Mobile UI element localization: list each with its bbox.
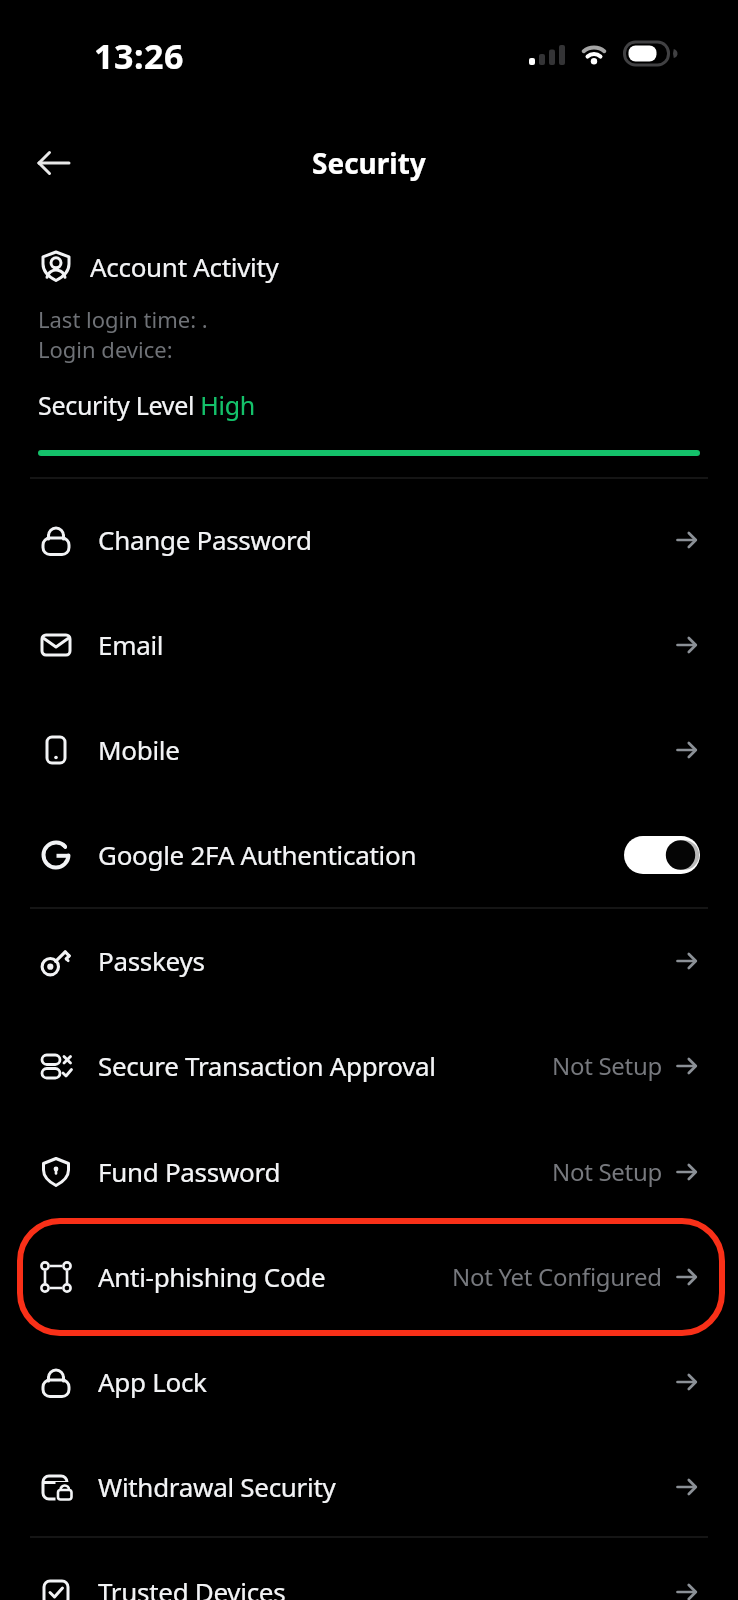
staticText: Not Yet Configured bbox=[452, 1260, 662, 1293]
staticText: Secure Transaction Approval bbox=[98, 1048, 436, 1083]
staticText: Anti-phishing Code bbox=[98, 1259, 326, 1294]
staticText: Change Password bbox=[98, 522, 312, 557]
staticText: Security bbox=[312, 144, 426, 182]
staticText: Not Setup bbox=[552, 1049, 662, 1082]
staticText: App Lock bbox=[98, 1364, 207, 1399]
staticText: Passkeys bbox=[98, 943, 205, 978]
staticText: 13:26 bbox=[94, 33, 184, 79]
staticText: Withdrawal Security bbox=[98, 1469, 336, 1504]
staticText: Last login time: . bbox=[38, 304, 208, 334]
staticText: Mobile bbox=[98, 732, 180, 767]
staticText: Google 2FA Authentication bbox=[98, 837, 417, 872]
staticText: Account Activity bbox=[90, 249, 279, 284]
staticText: Login device: bbox=[38, 334, 173, 364]
staticText: Trusted Devices bbox=[98, 1574, 286, 1600]
staticText: Email bbox=[98, 627, 164, 662]
staticText: Fund Password bbox=[98, 1154, 281, 1189]
staticText: Security Level High bbox=[38, 388, 255, 422]
staticText: Not Setup bbox=[552, 1155, 662, 1188]
